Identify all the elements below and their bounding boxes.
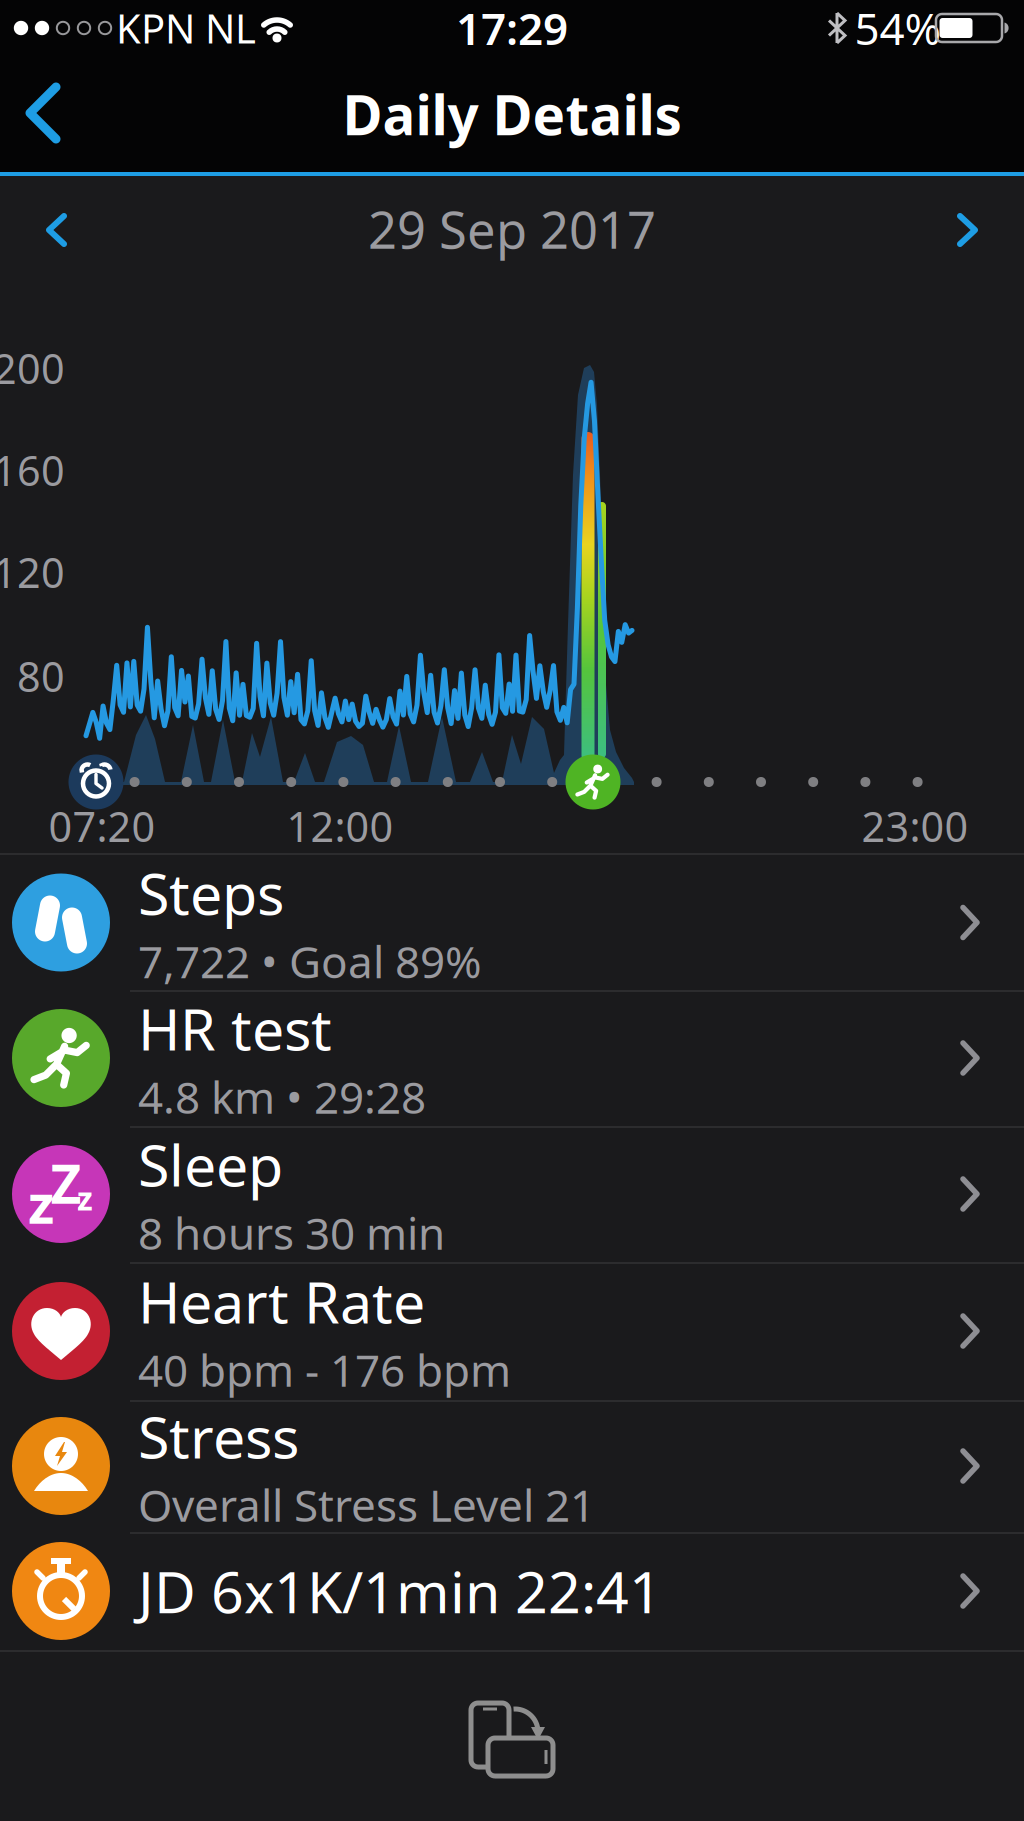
staticText: z bbox=[28, 1168, 54, 1238]
staticText: 8 hours 30 min bbox=[138, 1203, 445, 1262]
staticText: 23:00 bbox=[861, 799, 968, 853]
staticText: 200 bbox=[0, 341, 65, 395]
staticText: 29 Sep 2017 bbox=[368, 195, 656, 263]
button[interactable]: Next day bbox=[956, 213, 978, 247]
button[interactable]: Previous day bbox=[46, 213, 68, 247]
staticText: HR test bbox=[138, 990, 332, 1066]
staticText: 07:20 bbox=[48, 799, 155, 853]
staticText: 120 bbox=[0, 545, 65, 599]
staticText: Overall Stress Level 21 bbox=[138, 1475, 595, 1534]
staticText: JD 6x1K/1min 22:41 bbox=[138, 1553, 662, 1629]
button[interactable]: Back bbox=[20, 83, 70, 143]
staticText: KPN NL bbox=[116, 1, 256, 54]
button[interactable]: z bbox=[0, 1126, 1024, 1262]
button[interactable]: Steps bbox=[0, 855, 1024, 990]
staticText: Z bbox=[50, 1148, 81, 1218]
staticText: Stress bbox=[138, 1398, 299, 1474]
staticText: Daily Details bbox=[342, 78, 681, 150]
button[interactable]: JD 6x1K/1min 22:41 bbox=[0, 1532, 1024, 1650]
button[interactable]: Stress bbox=[0, 1400, 1024, 1532]
button[interactable]: Heart Rate bbox=[0, 1262, 1024, 1400]
staticText: Sleep bbox=[138, 1126, 283, 1202]
button[interactable]: HR test bbox=[0, 990, 1024, 1126]
staticText: 7,722 • Goal 89% bbox=[138, 932, 482, 990]
staticText: 40 bpm - 176 bpm bbox=[138, 1340, 511, 1399]
staticText: 12:00 bbox=[286, 799, 393, 853]
staticText: Heart Rate bbox=[138, 1263, 425, 1339]
staticText: 54% bbox=[854, 0, 941, 57]
staticText: 17:29 bbox=[456, 0, 568, 57]
staticText: 4.8 km • 29:28 bbox=[138, 1067, 426, 1126]
button[interactable]: Rotate to landscape bbox=[457, 1688, 567, 1784]
staticText: 160 bbox=[0, 443, 65, 497]
staticText: 80 bbox=[17, 649, 65, 703]
staticText: z bbox=[77, 1177, 93, 1219]
staticText: Steps bbox=[138, 855, 284, 931]
